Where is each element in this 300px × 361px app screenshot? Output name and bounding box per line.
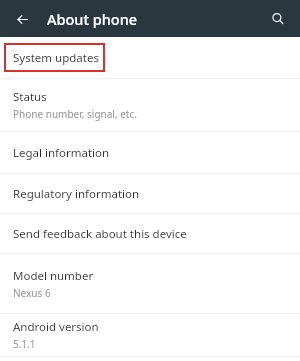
staticText: About phone xyxy=(47,9,138,29)
staticText: Phone number, signal, etc. xyxy=(13,107,137,121)
staticText: 5.1.1 xyxy=(13,337,36,351)
staticText: System updates xyxy=(13,50,99,66)
button[interactable]: Search xyxy=(265,6,291,32)
button[interactable]: Android version xyxy=(0,314,300,356)
staticText: Send feedback about this device xyxy=(13,226,187,242)
button[interactable]: Status xyxy=(0,79,300,131)
button[interactable]: System updates xyxy=(0,37,300,78)
staticText: Legal information xyxy=(13,145,110,161)
button[interactable]: Send feedback about this device xyxy=(0,214,300,253)
staticText: Status xyxy=(13,89,47,105)
button[interactable]: Model number xyxy=(0,254,300,313)
staticText: Nexus 6 xyxy=(13,286,51,300)
staticText: Model number xyxy=(13,268,94,284)
button[interactable]: Regulatory information xyxy=(0,174,300,213)
staticText: Regulatory information xyxy=(13,186,140,202)
button[interactable]: Back xyxy=(9,6,35,32)
staticText: Android version xyxy=(13,319,99,335)
button[interactable]: Legal information xyxy=(0,132,300,173)
